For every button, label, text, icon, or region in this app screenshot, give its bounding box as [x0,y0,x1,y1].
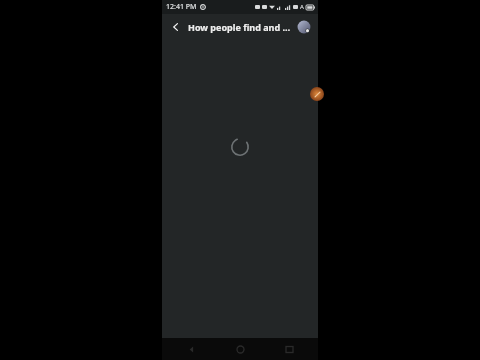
button[interactable]: Edit [310,87,324,101]
staticText: 12:41 PM [166,2,197,12]
staticText: A [300,3,304,11]
button[interactable]: Back [168,19,184,35]
button[interactable]: Home [225,338,255,360]
button[interactable]: Recents [274,338,304,360]
staticText: How people find and contact you [188,21,293,33]
button[interactable]: Account [296,19,312,35]
button[interactable]: Back [176,338,206,360]
